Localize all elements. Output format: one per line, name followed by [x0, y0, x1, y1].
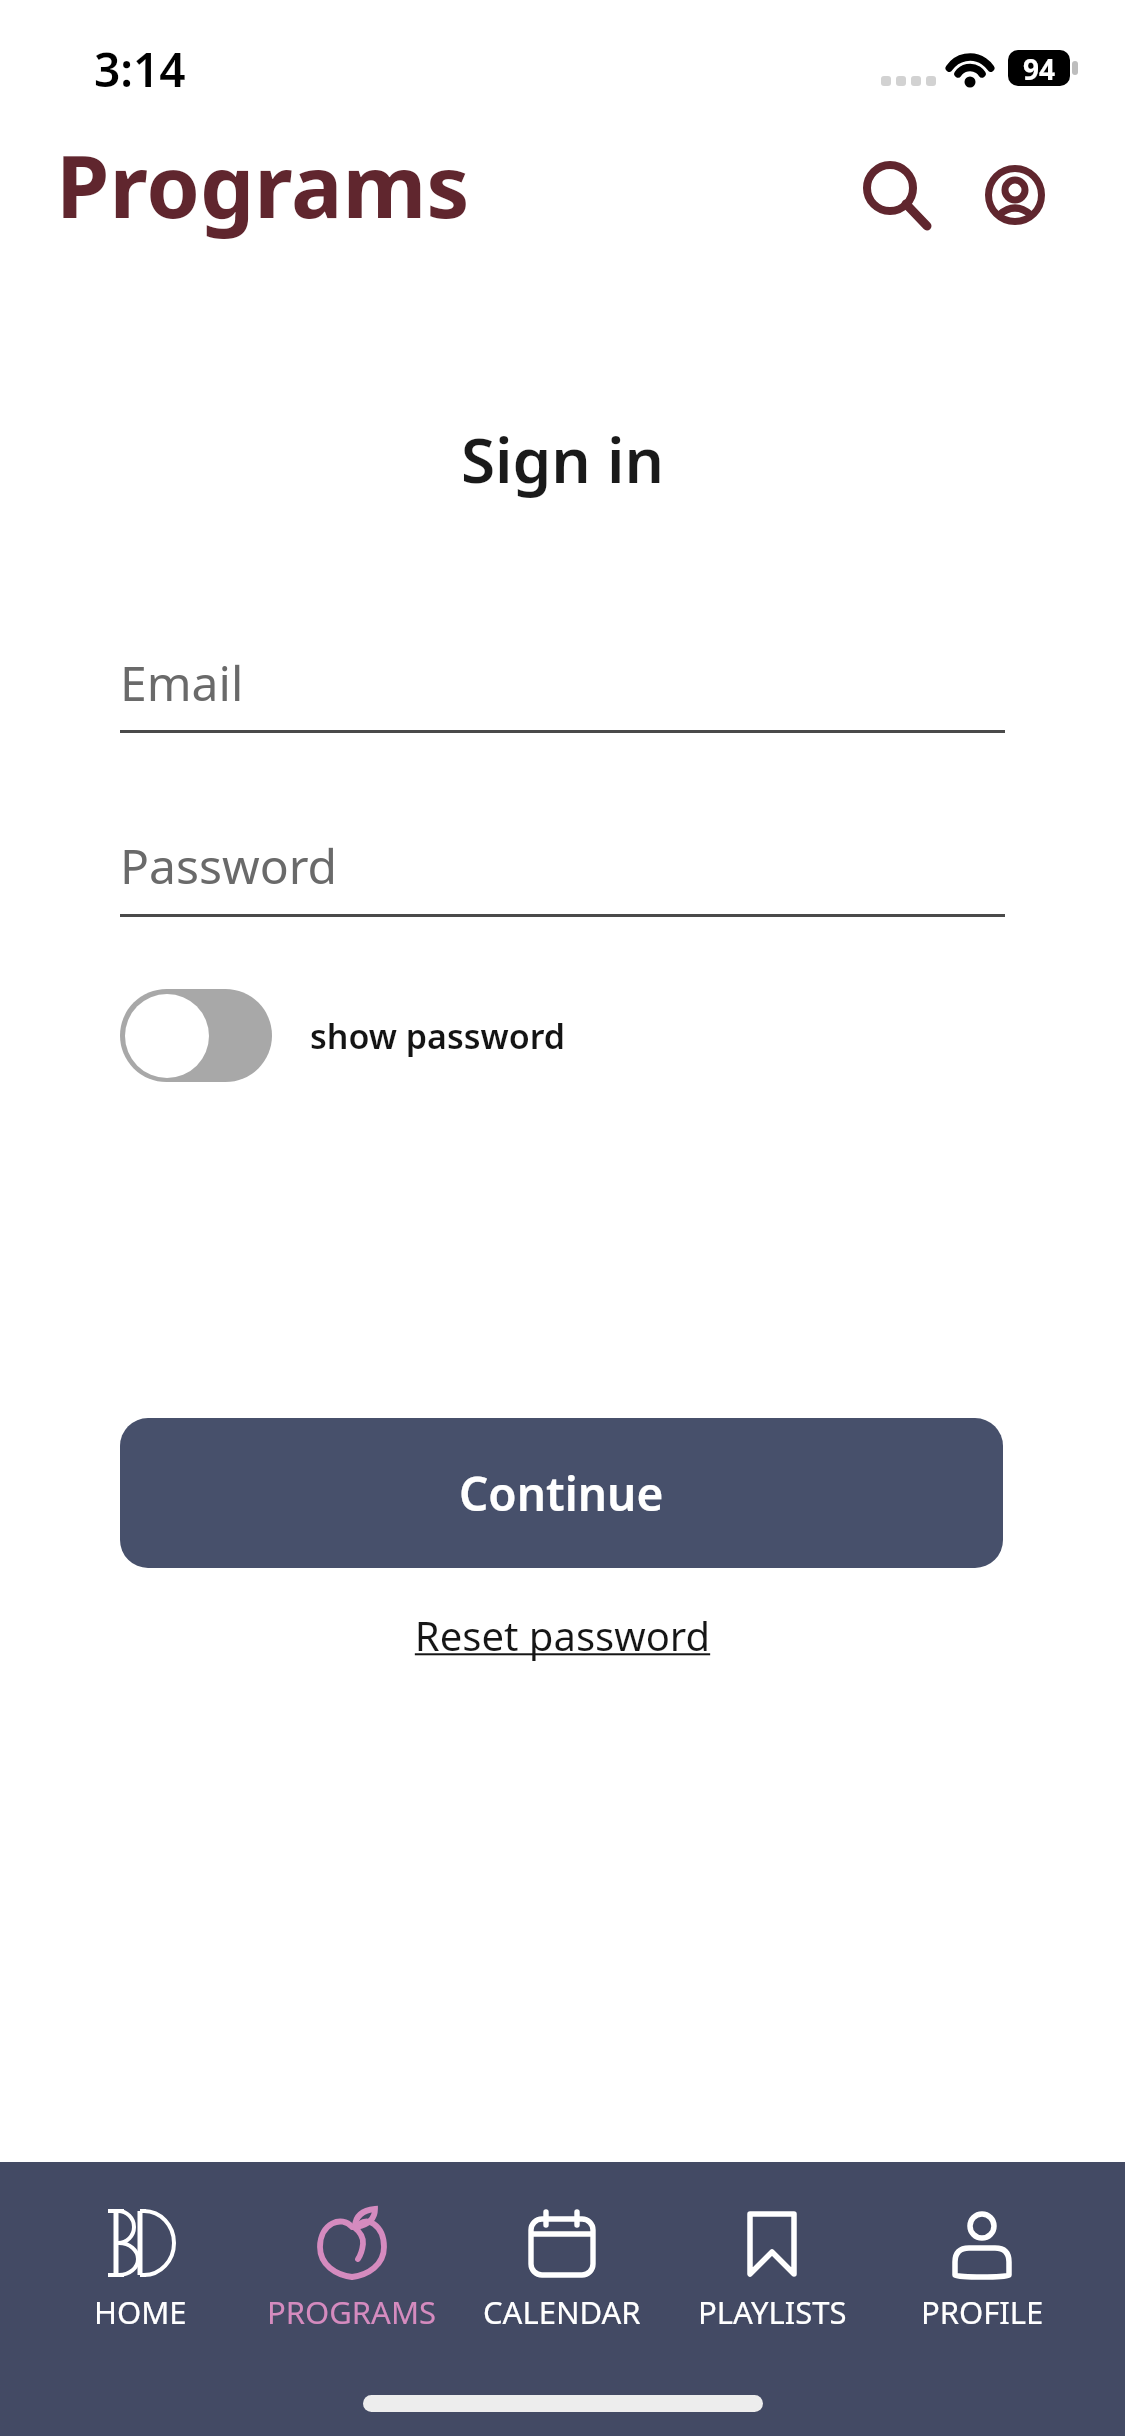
- staticText: Email: [120, 650, 244, 715]
- staticText: 94: [1023, 50, 1056, 86]
- button[interactable]: PROFILE: [877, 2162, 1087, 2436]
- staticText: show password: [310, 1013, 566, 1059]
- staticText: HOME: [94, 2291, 187, 2333]
- button[interactable]: Reset password: [0, 1608, 1125, 1662]
- staticText: Programs: [56, 126, 470, 243]
- staticText: PROFILE: [921, 2291, 1044, 2333]
- staticText: CALENDAR: [483, 2291, 641, 2333]
- button[interactable]: Continue: [120, 1418, 1003, 1568]
- staticText: Sign in: [0, 417, 1125, 501]
- button[interactable]: PLAYLISTS: [667, 2162, 877, 2436]
- staticText: PLAYLISTS: [698, 2291, 847, 2333]
- button[interactable]: [982, 162, 1048, 228]
- button[interactable]: PROGRAMS: [246, 2162, 457, 2436]
- button[interactable]: HOME: [35, 2162, 246, 2436]
- staticText: 3:14: [94, 38, 186, 101]
- staticText: Continue: [459, 1462, 664, 1525]
- button[interactable]: CALENDAR: [457, 2162, 667, 2436]
- button[interactable]: [856, 154, 936, 234]
- staticText: PROGRAMS: [267, 2291, 437, 2333]
- staticText: Password: [120, 833, 338, 898]
- button[interactable]: show password: [120, 989, 566, 1082]
